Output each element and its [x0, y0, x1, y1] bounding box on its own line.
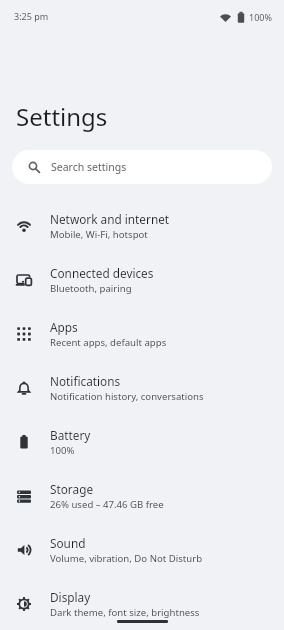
- button[interactable]: Battery: [0, 415, 284, 469]
- staticText: Connected devices: [50, 265, 154, 281]
- staticText: Apps: [50, 319, 78, 335]
- button[interactable]: Storage: [0, 469, 284, 523]
- button[interactable]: Connected devices: [0, 253, 284, 307]
- staticText: Display: [50, 589, 91, 605]
- button[interactable]: Sound: [0, 523, 284, 577]
- button[interactable]: Apps: [0, 307, 284, 361]
- staticText: Volume, vibration, Do Not Disturb: [50, 552, 203, 565]
- staticText: Mobile, Wi-Fi, hotspot: [50, 228, 148, 241]
- staticText: Bluetooth, pairing: [50, 282, 132, 295]
- staticText: Sound: [50, 535, 86, 551]
- button[interactable]: Display: [0, 577, 284, 630]
- staticText: Storage: [50, 481, 94, 497]
- staticText: Notifications: [50, 373, 121, 389]
- staticText: Battery: [50, 427, 91, 443]
- staticText: Recent apps, default apps: [50, 336, 167, 349]
- staticText: Network and internet: [50, 211, 170, 227]
- staticText: Settings: [16, 100, 108, 133]
- staticText: Dark theme, font size, brightness: [50, 606, 200, 619]
- staticText: Search settings: [51, 160, 127, 174]
- staticText: 100%: [249, 11, 272, 23]
- button[interactable]: Search settings: [12, 150, 272, 184]
- button[interactable]: Network and internet: [0, 199, 284, 253]
- staticText: 100%: [50, 444, 75, 457]
- staticText: 3:25 pm: [14, 10, 49, 22]
- staticText: Notification history, conversations: [50, 390, 204, 403]
- button[interactable]: Notifications: [0, 361, 284, 415]
- staticText: 26% used – 47.46 GB free: [50, 498, 164, 511]
